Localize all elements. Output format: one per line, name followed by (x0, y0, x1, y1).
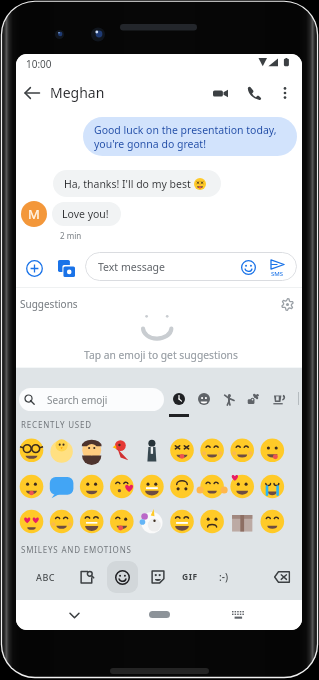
staticText: 2 min (60, 230, 82, 241)
button[interactable]: Good luck on the presentation today, you… (83, 117, 297, 156)
staticText: RECENTLY USED (21, 419, 92, 430)
button[interactable]: More options (270, 78, 300, 108)
button[interactable]: Love you! (52, 202, 121, 226)
button[interactable]: Backspace (267, 561, 297, 593)
button[interactable]: Send SMS (263, 253, 291, 281)
button[interactable]: Food and drink (268, 388, 290, 410)
staticText: SMILEYS AND EMOTIONS (21, 544, 132, 555)
staticText: :-) (219, 570, 229, 584)
button[interactable]: Ha, thanks! I'll do my best (53, 170, 221, 197)
button[interactable]: Recently used (168, 388, 190, 410)
button[interactable]: Back (17, 78, 47, 108)
button[interactable]: Stickers (142, 561, 173, 593)
button[interactable]: Home (136, 601, 182, 627)
button[interactable]: Suggestion settings (275, 292, 299, 316)
button[interactable]: GIF (175, 561, 205, 593)
staticText: Love you! (62, 207, 109, 221)
staticText: Meghan (50, 83, 105, 102)
button[interactable]: :-) (209, 561, 239, 593)
button[interactable]: Gallery (54, 256, 78, 280)
staticText: SMS (271, 270, 284, 278)
button[interactable]: Back (60, 601, 88, 629)
staticText: GIF (182, 571, 198, 583)
staticText: ABC (36, 571, 55, 583)
button[interactable]: Search emoji (19, 388, 164, 411)
button[interactable]: Search stickers (71, 561, 102, 593)
button[interactable]: Call (239, 78, 269, 108)
button[interactable]: Emoji (236, 255, 260, 279)
staticText: Suggestions (20, 297, 78, 311)
button[interactable]: Switch keyboard (224, 601, 252, 629)
button[interactable]: Video call (205, 78, 235, 108)
button[interactable]: ABC (19, 561, 71, 593)
button[interactable]: Smileys (193, 388, 215, 410)
button[interactable]: People (218, 388, 240, 410)
button[interactable]: Add attachment (22, 256, 46, 280)
staticText: Good luck on the presentation today, you… (94, 123, 277, 151)
button[interactable]: Animals and nature (242, 388, 264, 410)
button[interactable]: Emoji (107, 561, 138, 593)
staticText: Ha, thanks! I'll do my best (64, 177, 191, 191)
button[interactable]: Text message (85, 252, 297, 281)
staticText: Search emoji (47, 393, 108, 407)
staticText: M (28, 205, 40, 223)
staticText: 10:00 (26, 57, 52, 71)
staticText: Tap an emoji to get suggestions (84, 348, 238, 362)
staticText: Text message (98, 260, 165, 274)
